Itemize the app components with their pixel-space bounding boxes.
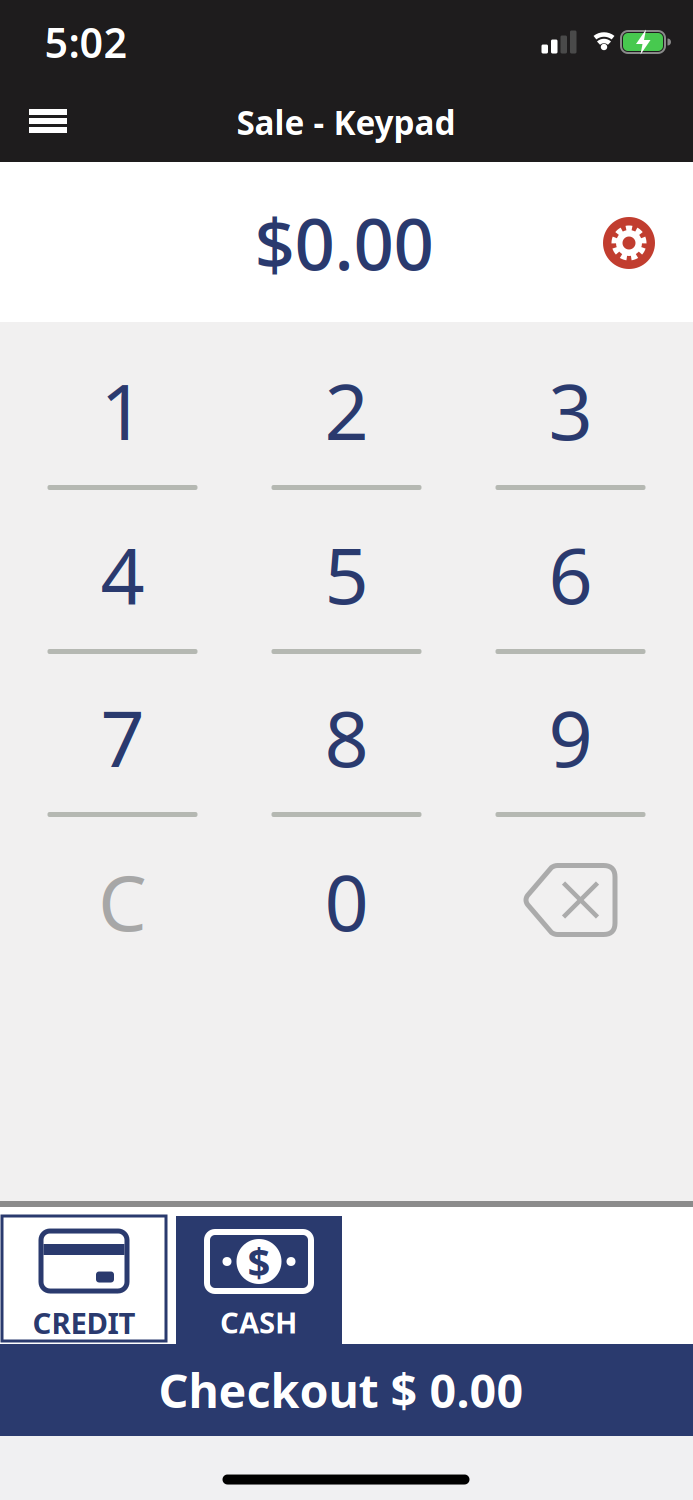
- button[interactable]: Menu: [20, 96, 76, 146]
- button[interactable]: Delete: [523, 863, 617, 937]
- button[interactable]: 2: [236, 355, 456, 490]
- staticText: CREDIT: [32, 1303, 135, 1342]
- staticText: Sale - Keypad: [236, 100, 455, 144]
- button[interactable]: 1: [12, 355, 232, 490]
- staticText: 1: [100, 359, 144, 461]
- button[interactable]: 8: [236, 682, 456, 817]
- button[interactable]: C: [12, 846, 232, 956]
- staticText: 5:02: [44, 15, 127, 69]
- button[interactable]: 3: [460, 355, 680, 490]
- button[interactable]: Settings: [603, 217, 655, 269]
- button[interactable]: 5: [236, 519, 456, 654]
- staticText: 4: [100, 523, 144, 625]
- staticText: 0: [324, 850, 368, 952]
- button[interactable]: $: [176, 1216, 342, 1344]
- staticText: C: [98, 850, 147, 952]
- button[interactable]: 6: [460, 519, 680, 654]
- staticText: 5: [324, 523, 368, 625]
- staticText: 6: [548, 523, 592, 625]
- button[interactable]: 4: [12, 519, 232, 654]
- button[interactable]: Checkout $ 0.00: [0, 1344, 693, 1436]
- staticText: 9: [548, 686, 592, 788]
- staticText: CASH: [220, 1302, 297, 1341]
- staticText: 8: [324, 686, 368, 788]
- button[interactable]: 0: [236, 846, 456, 956]
- staticText: 2: [324, 359, 368, 461]
- staticText: Checkout $ 0.00: [158, 1359, 523, 1421]
- button[interactable]: 9: [460, 682, 680, 817]
- button[interactable]: CREDIT: [2, 1216, 166, 1341]
- staticText: 7: [100, 686, 144, 788]
- staticText: 3: [548, 359, 592, 461]
- button[interactable]: 7: [12, 682, 232, 817]
- staticText: $: [247, 1235, 270, 1288]
- staticText: $0.00: [254, 196, 433, 290]
